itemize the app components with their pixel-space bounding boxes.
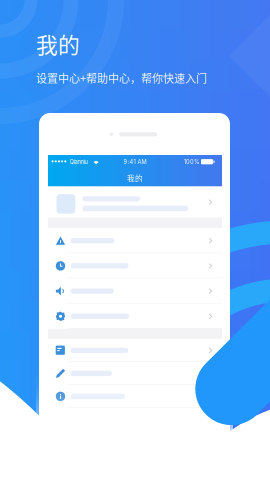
button[interactable] (48, 304, 222, 329)
button[interactable] (48, 339, 222, 362)
button[interactable] (48, 186, 222, 217)
staticText: 我的 (36, 28, 80, 59)
button[interactable] (48, 278, 222, 304)
button[interactable] (48, 362, 222, 385)
staticText: Qianniu (69, 158, 87, 165)
staticText: 100% (184, 158, 200, 165)
staticText: 设置中心+帮助中心，帮你快速入门 (36, 70, 207, 86)
button[interactable] (48, 253, 222, 278)
staticText: 我的 (127, 173, 143, 184)
button[interactable] (48, 228, 222, 253)
button[interactable] (48, 385, 222, 408)
staticText: 9:41 AM (123, 158, 146, 165)
